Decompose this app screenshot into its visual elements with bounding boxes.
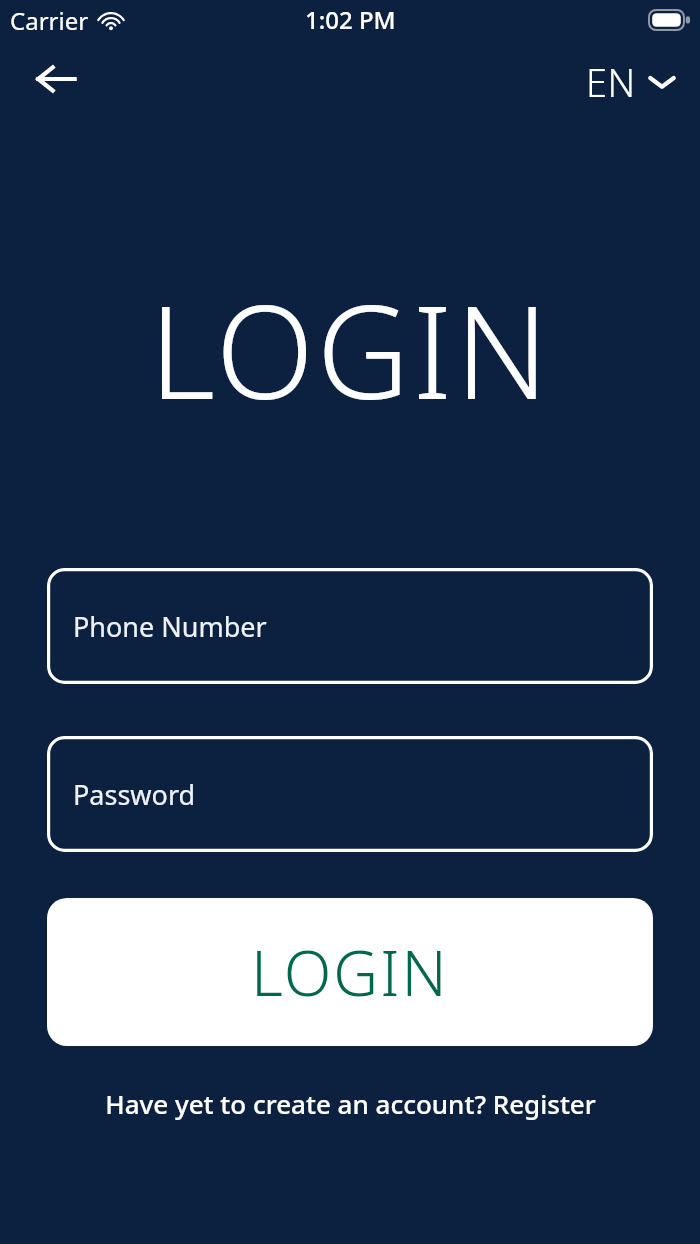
button[interactable]: EN	[580, 50, 682, 114]
button[interactable]: LOGIN	[47, 898, 653, 1046]
staticText: Phone Number	[73, 608, 267, 645]
button[interactable]: Password	[47, 736, 653, 852]
button[interactable]: Have yet to create an account? Register	[97, 1082, 604, 1125]
staticText: 1:02 PM	[305, 3, 396, 36]
staticText: Password	[73, 776, 196, 813]
button[interactable]: Back	[22, 43, 94, 115]
staticText: Carrier	[10, 4, 89, 37]
staticText: LOGIN	[251, 930, 449, 1014]
button[interactable]: Phone Number	[47, 568, 653, 684]
staticText: LOGIN	[149, 262, 552, 436]
staticText: EN	[586, 56, 636, 108]
